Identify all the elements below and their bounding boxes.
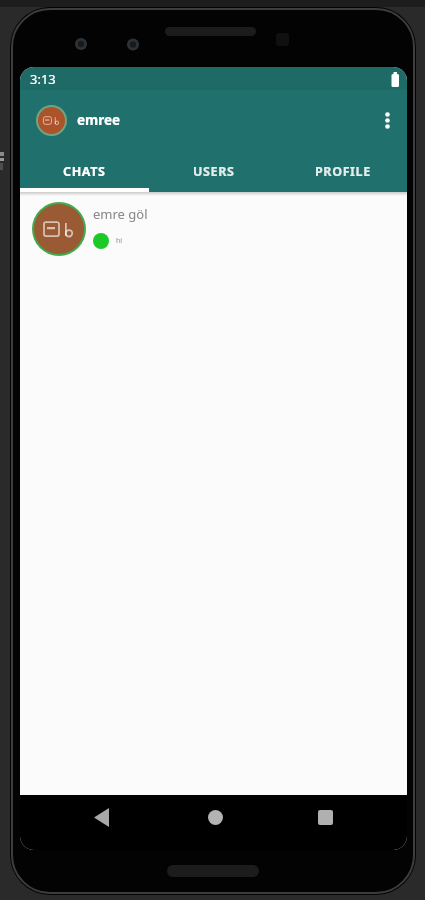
- staticText: PROFILE: [315, 163, 371, 180]
- button[interactable]: CHATS: [20, 150, 149, 192]
- staticText: 3:13: [30, 70, 56, 88]
- button[interactable]: [195, 795, 235, 839]
- staticText: emre göl: [93, 205, 148, 223]
- button[interactable]: [82, 795, 122, 839]
- button[interactable]: [367, 100, 407, 140]
- staticText: emree: [77, 111, 121, 129]
- button[interactable]: [305, 795, 345, 839]
- button[interactable]: PROFILE: [278, 150, 407, 192]
- staticText: CHATS: [63, 163, 106, 180]
- button[interactable]: USERS: [149, 150, 278, 192]
- button[interactable]: emre göl: [32, 202, 407, 256]
- staticText: USERS: [193, 163, 235, 180]
- staticText: hi: [116, 236, 123, 246]
